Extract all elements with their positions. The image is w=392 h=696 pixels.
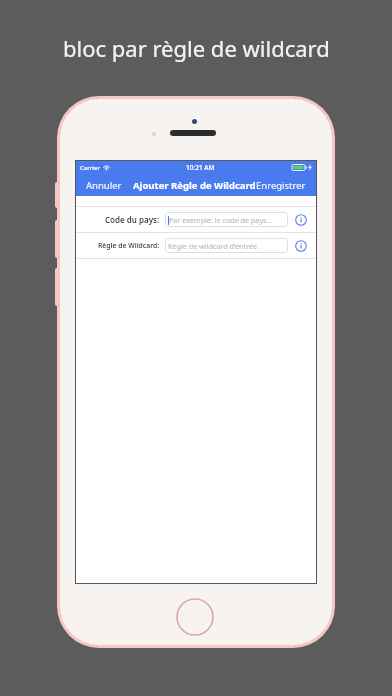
staticText: 10:21 AM xyxy=(186,163,215,172)
staticText: Code du pays: xyxy=(105,214,160,225)
staticText: Règle de Wildcard: xyxy=(98,241,160,250)
staticText: bloc par règle de wildcard xyxy=(63,33,330,63)
button[interactable]: Règle de Wildcard: xyxy=(76,233,316,258)
staticText: Enregistrer xyxy=(256,179,306,192)
staticText: Carrier xyxy=(80,164,100,172)
button[interactable]: Home xyxy=(175,597,215,637)
button[interactable]: Information xyxy=(294,239,308,253)
button[interactable]: Annuler xyxy=(86,179,122,192)
staticText: Ajouter Règle de Wildcard xyxy=(133,179,256,192)
staticText: Règle de wildcard d'entrée xyxy=(168,241,258,251)
button[interactable]: Information xyxy=(294,213,308,227)
button[interactable]: Par exemple: le code de pays... xyxy=(165,212,288,227)
staticText: Annuler xyxy=(86,179,122,192)
staticText: Par exemple: le code de pays... xyxy=(169,215,273,225)
button[interactable]: Enregistrer xyxy=(256,179,306,192)
button[interactable]: Code du pays: xyxy=(76,207,316,232)
button[interactable]: Règle de wildcard d'entrée xyxy=(165,238,288,253)
